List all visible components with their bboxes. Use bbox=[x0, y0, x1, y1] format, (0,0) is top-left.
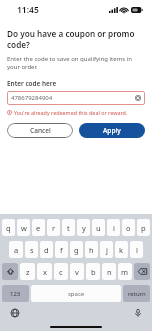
staticText: Enter the code to save on qualifying ite… bbox=[7, 55, 145, 71]
button[interactable]: c bbox=[54, 263, 68, 280]
staticText: o bbox=[126, 223, 131, 233]
staticText: a bbox=[14, 245, 19, 255]
button[interactable]: m bbox=[118, 263, 132, 280]
button[interactable]: f bbox=[55, 241, 68, 258]
button[interactable]: 478679284904 bbox=[7, 91, 145, 105]
button[interactable]: d bbox=[40, 241, 53, 258]
staticText: Enter code here bbox=[7, 79, 57, 88]
staticText: 478679284904 bbox=[11, 94, 135, 102]
staticText: space bbox=[68, 290, 85, 298]
button[interactable]: w bbox=[17, 219, 30, 236]
button[interactable]: p bbox=[137, 219, 150, 236]
button[interactable]: t bbox=[62, 219, 75, 236]
staticText: x bbox=[43, 267, 47, 277]
staticText: y bbox=[82, 223, 86, 233]
staticText: 123 bbox=[10, 290, 21, 298]
staticText: n bbox=[107, 267, 112, 277]
staticText: b bbox=[91, 267, 96, 277]
staticText: t bbox=[67, 223, 70, 233]
staticText: e bbox=[36, 223, 41, 233]
button[interactable]: e bbox=[32, 219, 45, 236]
button[interactable]: Cancel bbox=[7, 123, 73, 138]
button[interactable]: l bbox=[130, 241, 143, 258]
button[interactable]: u bbox=[92, 219, 105, 236]
staticText: l bbox=[136, 245, 138, 255]
button[interactable]: z bbox=[20, 263, 35, 280]
staticText: i bbox=[113, 223, 115, 233]
button[interactable]: q bbox=[2, 219, 15, 236]
staticText: j bbox=[106, 245, 108, 255]
button[interactable]: 123 bbox=[2, 285, 29, 302]
button[interactable]: s bbox=[25, 241, 38, 258]
staticText: w bbox=[21, 223, 27, 233]
button[interactable]: h bbox=[85, 241, 98, 258]
button[interactable]: Clear text bbox=[135, 95, 141, 101]
staticText: u bbox=[96, 223, 101, 233]
button[interactable]: n bbox=[102, 263, 116, 280]
staticText: You're already redeemed this deal or rew… bbox=[14, 109, 128, 116]
button[interactable]: k bbox=[115, 241, 128, 258]
button[interactable]: i bbox=[107, 219, 120, 236]
button[interactable]: Apply bbox=[79, 123, 145, 138]
staticText: k bbox=[119, 245, 124, 255]
staticText: s bbox=[30, 245, 34, 255]
staticText: q bbox=[6, 223, 11, 233]
button[interactable]: b bbox=[86, 263, 100, 280]
staticText: r bbox=[52, 223, 56, 233]
staticText: d bbox=[44, 245, 49, 255]
button[interactable]: Dictate bbox=[132, 307, 143, 318]
button[interactable]: Shift bbox=[2, 263, 18, 280]
staticText: h bbox=[89, 245, 94, 255]
button[interactable]: space bbox=[31, 285, 121, 302]
button[interactable]: v bbox=[70, 263, 84, 280]
staticText: Do you have a coupon or promo code? bbox=[7, 28, 145, 50]
button[interactable]: a bbox=[9, 241, 23, 258]
button[interactable]: Backspace bbox=[134, 263, 150, 280]
staticText: m bbox=[121, 267, 129, 277]
staticText: v bbox=[75, 267, 79, 277]
staticText: Apply bbox=[103, 126, 121, 135]
button[interactable]: Change keyboard bbox=[9, 307, 20, 318]
button[interactable]: y bbox=[77, 219, 90, 236]
staticText: Cancel bbox=[30, 126, 51, 135]
button[interactable]: o bbox=[122, 219, 135, 236]
button[interactable]: j bbox=[100, 241, 113, 258]
staticText: f bbox=[60, 245, 63, 255]
button[interactable]: x bbox=[37, 263, 52, 280]
staticText: return bbox=[128, 290, 146, 298]
staticText: p bbox=[141, 223, 146, 233]
staticText: 11:45 bbox=[17, 4, 39, 16]
button[interactable]: return bbox=[123, 285, 150, 302]
staticText: z bbox=[26, 267, 30, 277]
staticText: g bbox=[74, 245, 79, 255]
button[interactable]: g bbox=[70, 241, 83, 258]
button[interactable]: r bbox=[47, 219, 60, 236]
staticText: c bbox=[59, 267, 63, 277]
